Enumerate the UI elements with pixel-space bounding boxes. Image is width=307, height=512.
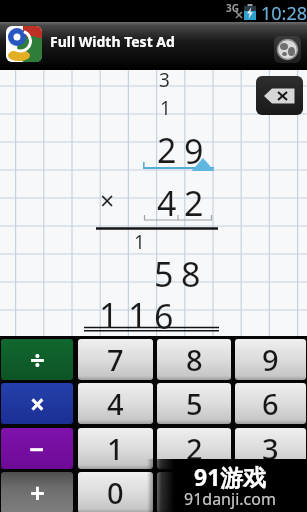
button[interactable] [256,76,303,115]
staticText: × [100,183,115,217]
staticText: 91danji.com [184,488,276,510]
staticText: 1 [160,95,171,121]
staticText: × [30,386,45,421]
button[interactable]: × [1,383,73,424]
button[interactable]: + [1,472,73,512]
staticText: 9 [262,340,279,379]
staticText: 1 [128,292,148,332]
button[interactable]: Full Width Test Ad [0,22,307,70]
staticText: 1 [107,429,124,468]
button[interactable] [274,36,301,63]
button[interactable] [157,472,231,512]
staticText: 5 [186,384,203,423]
button[interactable]: 1 [78,428,153,469]
button[interactable]: 3 [235,428,306,469]
staticText: 2 [184,180,204,220]
button[interactable] [235,472,306,512]
staticText: 7 [107,340,124,379]
staticText: 3G [226,1,239,15]
staticText: 4 [157,180,177,220]
button[interactable]: 4 [78,383,153,424]
staticText: 6 [154,293,174,333]
button[interactable]: 5 [157,383,231,424]
button[interactable]: − [1,428,73,469]
staticText: 2 [157,127,177,167]
staticText: 9 [184,128,204,168]
staticText: + [30,475,45,510]
staticText: 8 [186,340,203,379]
button[interactable]: 8 [157,339,231,380]
staticText: 1 [134,229,145,255]
staticText: 91游戏 [194,461,267,492]
button[interactable]: 6 [235,383,306,424]
staticText: Full Width Test Ad [50,32,175,51]
staticText: 2 [186,429,203,468]
staticText: − [29,431,45,466]
staticText: 0 [107,473,124,512]
staticText: 8 [181,251,201,291]
button[interactable]: 2 [157,428,231,469]
staticText: 3 [262,429,279,468]
button[interactable]: 7 [78,339,153,380]
staticText: 1 [99,292,119,332]
staticText: 10:28 [261,1,307,23]
staticText: ÷ [30,342,45,377]
button[interactable]: ÷ [1,339,73,380]
staticText: 5 [154,251,174,291]
staticText: 3 [159,67,170,93]
button[interactable]: 9 [235,339,306,380]
staticText: 4 [107,384,124,423]
button[interactable]: 0 [78,472,153,512]
staticText: 6 [262,384,279,423]
